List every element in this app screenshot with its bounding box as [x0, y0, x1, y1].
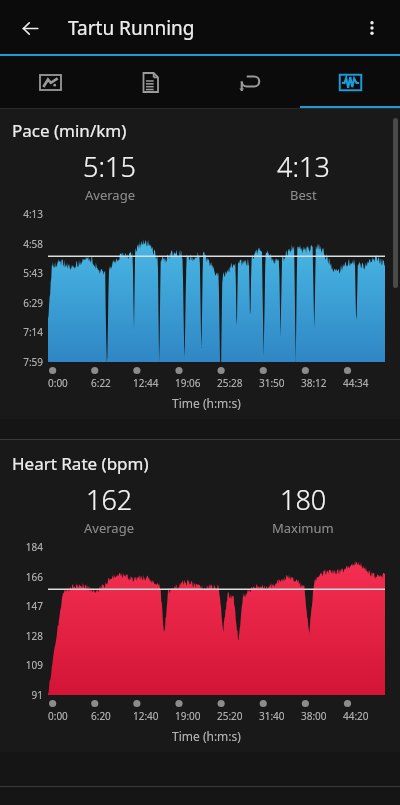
- staticText: 25:28: [217, 376, 243, 390]
- staticText: Best: [290, 186, 317, 204]
- staticText: Heart Rate (bpm): [12, 452, 149, 475]
- staticText: 5:43: [12, 266, 43, 280]
- staticText: 31:50: [259, 376, 285, 390]
- staticText: 109: [12, 658, 43, 672]
- staticText: 4:58: [12, 237, 43, 251]
- staticText: 6:29: [12, 296, 43, 310]
- staticText: 38:00: [301, 709, 327, 723]
- button[interactable]: Map: [0, 56, 100, 109]
- button[interactable]: Back: [8, 6, 52, 50]
- staticText: 31:40: [259, 709, 285, 723]
- staticText: 162: [86, 481, 133, 518]
- button[interactable]: Charts: [300, 56, 400, 109]
- staticText: 0:00: [48, 376, 68, 390]
- staticText: 184: [12, 540, 43, 554]
- staticText: 44:20: [343, 709, 369, 723]
- staticText: 12:40: [133, 709, 159, 723]
- staticText: Time (h:m:s): [172, 395, 241, 411]
- staticText: 5:15: [83, 148, 136, 185]
- staticText: Maximum: [272, 519, 334, 537]
- button[interactable]: More options: [350, 6, 394, 50]
- staticText: 7:59: [12, 355, 43, 369]
- staticText: Tartu Running: [68, 15, 195, 41]
- staticText: 12:44: [133, 376, 159, 390]
- staticText: Time (h:m:s): [172, 728, 241, 744]
- staticText: 19:00: [175, 709, 201, 723]
- staticText: 128: [12, 629, 43, 643]
- staticText: 6:20: [91, 709, 111, 723]
- staticText: 4:13: [12, 207, 43, 221]
- staticText: 180: [280, 481, 327, 518]
- staticText: 7:14: [12, 325, 43, 339]
- staticText: 4:13: [277, 148, 330, 185]
- staticText: 0:00: [48, 709, 68, 723]
- staticText: 25:20: [217, 709, 243, 723]
- button[interactable]: Laps: [200, 56, 300, 109]
- staticText: 19:06: [175, 376, 201, 390]
- staticText: 44:34: [343, 376, 369, 390]
- staticText: 91: [12, 688, 43, 702]
- staticText: Average: [85, 186, 135, 204]
- button[interactable]: Summary: [100, 56, 200, 109]
- staticText: 166: [12, 570, 43, 584]
- staticText: Average: [84, 519, 134, 537]
- staticText: 38:12: [301, 376, 327, 390]
- staticText: 6:22: [91, 376, 111, 390]
- staticText: 147: [12, 599, 43, 613]
- staticText: Pace (min/km): [12, 119, 127, 142]
